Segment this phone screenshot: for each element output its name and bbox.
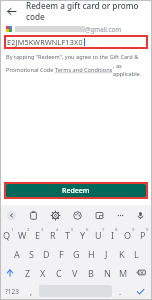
button[interactable]: F [54,244,69,263]
button[interactable]: , [23,282,39,300]
staticText: 5 [71,227,74,233]
button[interactable]: X [35,263,51,282]
staticText: C [56,267,62,279]
staticText: 9 [132,227,135,233]
staticText: G [73,248,80,260]
staticText: 1 [11,227,14,233]
button[interactable]: M [115,263,131,282]
staticText: , as applicable. [113,62,146,78]
button[interactable]: Terms and Conditions [55,66,113,74]
button[interactable]: T [62,225,77,244]
staticText: B [88,267,94,279]
staticText: L [134,248,139,260]
button[interactable]: G [69,244,84,263]
button[interactable]: Backspace [131,263,152,282]
staticText: J [105,248,108,260]
button[interactable]: Q [0,225,16,244]
button[interactable]: Enter [128,282,152,300]
staticText: Redeem [62,186,90,196]
button[interactable]: E [32,225,47,244]
button[interactable]: Translate [93,209,105,221]
button[interactable]: More options [114,209,126,221]
button[interactable]: J [99,244,114,263]
staticText: X [40,267,46,279]
staticText: D [43,248,50,260]
staticText: E2JM5KWRWNLF13X0 [7,37,83,47]
staticText: @gmail.com [85,25,121,33]
staticText: 4 [56,227,59,233]
staticText: Promotional Code [6,66,55,74]
staticText: 8 [115,227,118,233]
button[interactable]: Expand toolbar [5,209,17,221]
staticText: V [72,267,78,279]
staticText: . [119,286,122,297]
button[interactable]: A [9,244,24,263]
button[interactable]: L [129,244,144,263]
staticText: K [119,248,125,260]
button[interactable]: Voice input [134,209,146,221]
staticText: Redeem a gift card or promo code [26,0,152,22]
staticText: E [35,229,41,241]
button[interactable]: N [99,263,115,282]
button[interactable]: D [39,244,54,263]
staticText: M [119,267,128,279]
staticText: 2 [27,227,30,233]
staticText: A [14,248,20,260]
button[interactable]: K [114,244,129,263]
button[interactable]: E2JM5KWRWNLF13X0 [7,35,148,49]
button[interactable]: U [92,225,107,244]
staticText: 6 [86,227,89,233]
button[interactable]: . [112,282,128,300]
button[interactable]: B [83,263,99,282]
button[interactable]: W [16,225,32,244]
button[interactable]: Z [20,263,35,282]
staticText: P [140,229,146,241]
button[interactable]: V [67,263,83,282]
button[interactable]: R [47,225,62,244]
staticText: 0 [146,227,149,233]
button[interactable]: Shift [0,263,20,282]
button[interactable]: Stickers [71,209,83,221]
button[interactable]: Y [77,225,92,244]
button[interactable]: Back [0,0,22,22]
staticText: Q [3,229,11,241]
button[interactable]: S [24,244,39,263]
staticText: F [59,248,64,260]
button[interactable]: Clipboard [27,209,39,221]
staticText: R [50,229,56,241]
button[interactable]: C [51,263,67,282]
button[interactable]: ?123 [0,282,23,300]
staticText: , [30,286,33,297]
staticText: T [65,229,71,241]
staticText: By tapping "Redeem", you agree to the Gi… [6,53,139,61]
staticText: ?123 [5,287,19,296]
staticText: S [29,248,34,260]
staticText: 3 [41,227,44,233]
staticText: W [18,229,27,241]
staticText: U [95,229,102,241]
button[interactable]: @gmail.com [6,22,146,35]
staticText: I [111,229,115,241]
staticText: Z [25,267,31,279]
staticText: N [104,267,111,279]
button[interactable]: Settings [49,209,61,221]
button[interactable]: Redeem [6,184,146,197]
staticText: O [124,229,132,241]
staticText: H [88,248,95,260]
button[interactable]: O [122,225,137,244]
staticText: 7 [102,227,105,233]
staticText: Y [80,229,86,241]
button[interactable]: H [84,244,99,263]
button[interactable]: P [137,225,152,244]
button[interactable]: I [107,225,122,244]
